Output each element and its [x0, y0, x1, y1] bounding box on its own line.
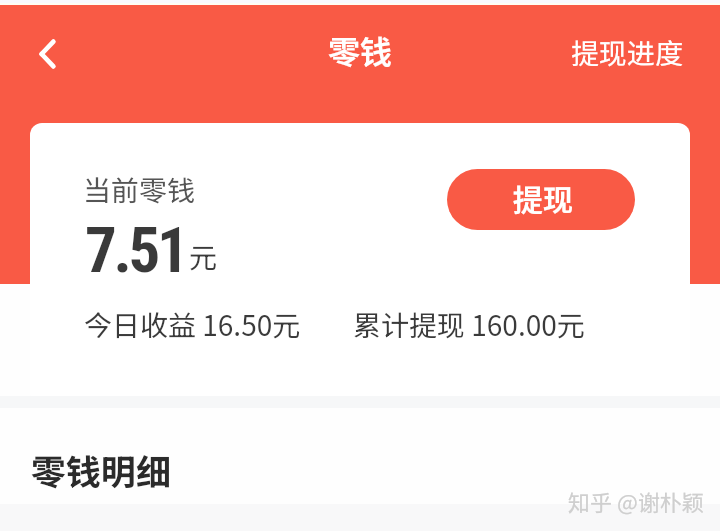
- button[interactable]: Back: [14, 27, 68, 81]
- staticText: 零钱明细: [31, 444, 172, 495]
- button[interactable]: 提现进度: [559, 20, 696, 85]
- button[interactable]: 零钱明细: [0, 408, 720, 504]
- staticText: 提现: [513, 176, 573, 219]
- button[interactable]: 提现: [447, 169, 635, 230]
- staticText: 7.51: [85, 214, 186, 288]
- staticText: 知乎 @谢朴颖: [568, 485, 704, 517]
- staticText: 累计提现 160.00元: [353, 304, 585, 345]
- staticText: 当前零钱: [83, 169, 196, 210]
- staticText: 零钱: [328, 27, 393, 73]
- staticText: 提现进度: [571, 32, 684, 73]
- staticText: 今日收益 16.50元: [84, 304, 301, 345]
- staticText: 元: [189, 236, 218, 277]
